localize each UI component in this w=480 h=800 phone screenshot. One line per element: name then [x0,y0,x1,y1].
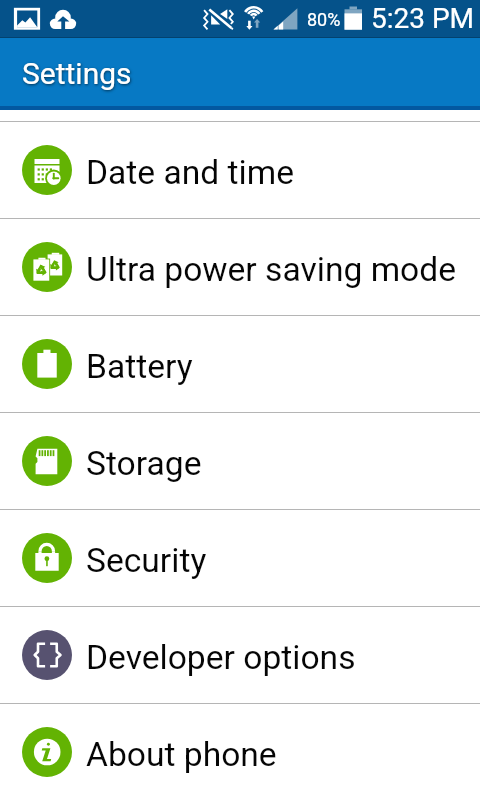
staticText: Developer options [86,638,356,677]
button[interactable]: About phone [0,704,480,800]
button[interactable]: Ultra power saving mode [0,219,480,315]
staticText: About phone [86,735,277,774]
staticText: 80% [307,9,341,30]
staticText: Date and time [86,153,294,192]
button[interactable]: Developer options [0,607,480,703]
button[interactable]: Date and time [0,122,480,218]
staticText: Battery [86,347,193,386]
staticText: Security [86,541,207,580]
staticText: Ultra power saving mode [86,250,457,289]
button[interactable]: Security [0,510,480,606]
staticText: 5:23 PM [371,2,475,35]
staticText: Settings [22,56,132,91]
button[interactable]: Storage [0,413,480,509]
button[interactable]: Battery [0,316,480,412]
staticText: Storage [86,444,202,483]
